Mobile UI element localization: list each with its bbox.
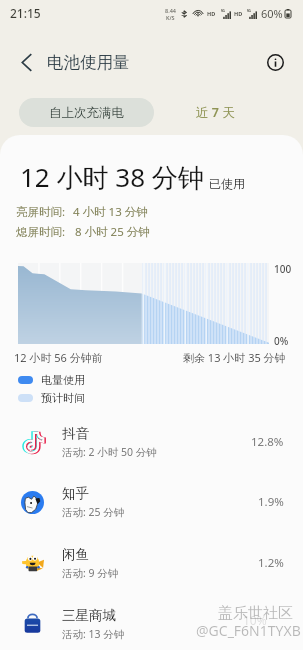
staticText: 剩余 13 小时 35 分钟 <box>183 350 286 365</box>
button[interactable]: 抖音 <box>0 412 303 472</box>
staticText: 8 小时 25 分钟 <box>75 224 150 240</box>
staticText: K/S <box>166 14 175 21</box>
staticText: 0% <box>274 334 289 348</box>
staticText: 1.2% <box>258 555 284 571</box>
staticText: 10% <box>243 612 267 628</box>
staticText: 闲鱼 <box>62 546 89 563</box>
staticText: 活动: 9 分钟 <box>62 566 119 580</box>
button[interactable]: Information <box>259 46 291 78</box>
staticText: HD <box>207 10 216 17</box>
staticText: 12 小时 38 分钟 <box>20 159 204 195</box>
staticText: 活动: 25 分钟 <box>62 505 125 519</box>
staticText: 1.9% <box>258 494 284 510</box>
staticText: 60% <box>261 6 283 21</box>
staticText: 熄屏时间: <box>16 224 66 240</box>
staticText: 100 <box>274 262 292 276</box>
button[interactable]: 知乎 <box>0 472 303 532</box>
button[interactable]: 闲鱼 <box>0 533 303 593</box>
staticText: HD <box>234 10 243 17</box>
staticText: 预计时间 <box>41 391 85 405</box>
staticText: 已使用 <box>209 176 245 191</box>
staticText: 12.8% <box>251 434 284 450</box>
button[interactable]: 自上次充满电 <box>19 98 154 127</box>
staticText: 21:15 <box>10 5 41 21</box>
staticText: 电量使用 <box>41 373 85 387</box>
staticText: 近 7 天 <box>196 104 235 121</box>
staticText: 12 小时 56 分钟前 <box>14 350 103 365</box>
button[interactable]: 三星商城 <box>0 594 303 650</box>
staticText: 盖乐世社区 <box>218 604 293 623</box>
staticText: 自上次充满电 <box>49 105 124 121</box>
staticText: 抖音 <box>62 425 89 442</box>
staticText: 4 小时 13 分钟 <box>73 204 148 220</box>
staticText: 电池使用量 <box>47 52 130 73</box>
staticText: 知乎 <box>62 485 89 502</box>
button[interactable]: 近 7 天 <box>175 98 255 127</box>
staticText: 活动: 13 分钟 <box>62 627 125 641</box>
staticText: 8.44 <box>165 7 176 14</box>
staticText: 三星商城 <box>62 607 116 624</box>
button[interactable]: Back <box>10 46 42 78</box>
staticText: 活动: 2 小时 50 分钟 <box>62 445 157 459</box>
staticText: 亮屏时间: <box>16 204 66 220</box>
staticText: @GC_F6N1TYXB <box>196 621 301 640</box>
